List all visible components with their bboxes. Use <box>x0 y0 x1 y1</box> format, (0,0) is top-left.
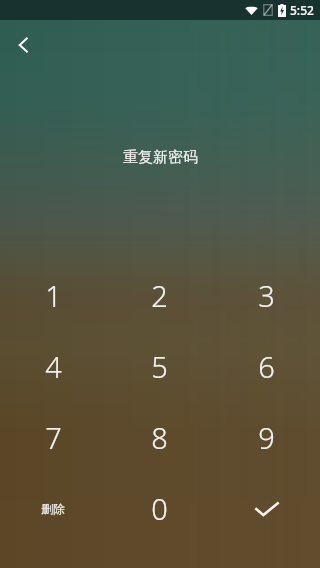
staticText: 7 <box>45 418 62 457</box>
button[interactable]: 2 <box>106 260 213 331</box>
button[interactable]: 6 <box>213 331 320 402</box>
staticText: 8 <box>151 418 168 457</box>
staticText: 重复新密码 <box>123 148 198 167</box>
button[interactable]: 5 <box>106 331 213 402</box>
staticText: 删除 <box>41 501 65 516</box>
button[interactable]: 4 <box>0 331 106 402</box>
staticText: 1 <box>45 276 62 315</box>
staticText: 3 <box>258 276 275 315</box>
staticText: 9 <box>258 418 275 457</box>
staticText: 5 <box>151 347 168 386</box>
button[interactable]: 3 <box>213 260 320 331</box>
button[interactable]: 8 <box>106 402 213 473</box>
button[interactable]: Confirm <box>213 473 320 544</box>
button[interactable]: 7 <box>0 402 106 473</box>
staticText: 0 <box>151 489 168 528</box>
button[interactable]: 删除 <box>0 473 106 544</box>
staticText: 5:52 <box>290 2 314 18</box>
button[interactable]: 9 <box>213 402 320 473</box>
staticText: 2 <box>151 276 168 315</box>
button[interactable]: 0 <box>106 473 213 544</box>
button[interactable]: 1 <box>0 260 106 331</box>
button[interactable]: Back <box>0 21 48 69</box>
staticText: 6 <box>258 347 275 386</box>
staticText: 4 <box>45 347 62 386</box>
